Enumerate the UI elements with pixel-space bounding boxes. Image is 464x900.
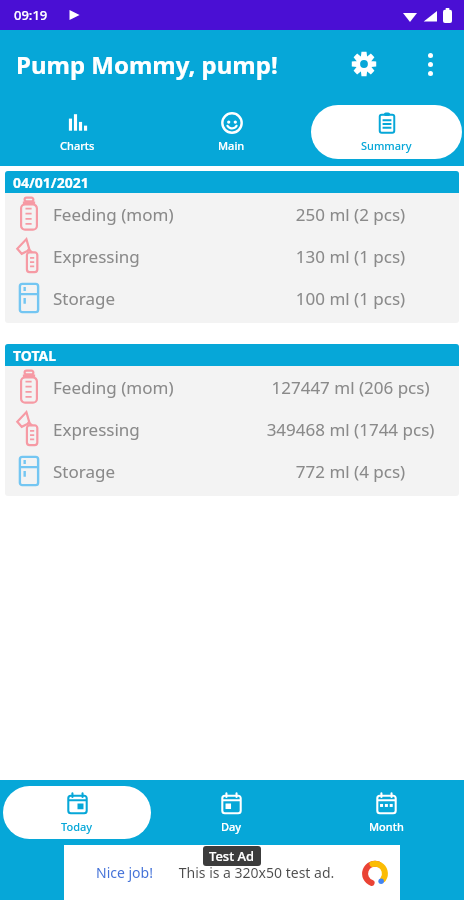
button[interactable]: Feeding (mom) xyxy=(5,366,459,408)
staticText: Summary xyxy=(361,138,412,153)
button[interactable]: Expressing xyxy=(5,235,459,277)
staticText: Main xyxy=(218,138,245,153)
staticText: This is a 320x50 test ad. xyxy=(153,863,360,882)
button[interactable]: Day xyxy=(157,786,306,839)
button[interactable]: 04/01/2021 xyxy=(5,171,459,323)
button[interactable]: More options xyxy=(408,42,452,86)
button[interactable]: Summary xyxy=(311,105,462,159)
staticText: 349468 ml (1744 pcs) xyxy=(242,418,459,441)
staticText: TOTAL xyxy=(13,346,57,365)
button[interactable]: Nice job! xyxy=(64,845,400,900)
staticText: 127447 ml (206 pcs) xyxy=(242,376,459,399)
staticText: Storage xyxy=(53,287,242,310)
staticText: 100 ml (1 pcs) xyxy=(242,287,459,310)
staticText: 04/01/2021 xyxy=(13,173,89,192)
button[interactable]: Expressing xyxy=(5,408,459,450)
staticText: Feeding (mom) xyxy=(53,203,242,226)
staticText: 772 ml (4 pcs) xyxy=(242,460,459,483)
button[interactable]: Feeding (mom) xyxy=(5,193,459,235)
button[interactable]: Today xyxy=(3,786,151,839)
button[interactable]: Settings xyxy=(342,42,386,86)
staticText: Test Ad xyxy=(209,847,255,865)
staticText: Nice job! xyxy=(96,863,153,882)
staticText: 09:19 xyxy=(14,6,48,24)
staticText: Expressing xyxy=(53,418,242,441)
button[interactable]: Storage xyxy=(5,277,459,319)
staticText: Month xyxy=(369,819,404,834)
staticText: Expressing xyxy=(53,245,242,268)
button[interactable]: TOTAL xyxy=(5,344,459,496)
staticText: Feeding (mom) xyxy=(53,376,242,399)
button[interactable]: Charts xyxy=(2,105,152,159)
staticText: Storage xyxy=(53,460,242,483)
button[interactable]: Main xyxy=(156,105,307,159)
staticText: Charts xyxy=(60,138,95,153)
staticText: Today xyxy=(61,819,93,834)
staticText: 130 ml (1 pcs) xyxy=(242,245,459,268)
button[interactable]: Month xyxy=(312,786,461,839)
staticText: Pump Mommy, pump! xyxy=(16,48,278,81)
staticText: 250 ml (2 pcs) xyxy=(242,203,459,226)
staticText: Day xyxy=(221,819,242,834)
button[interactable]: Storage xyxy=(5,450,459,492)
